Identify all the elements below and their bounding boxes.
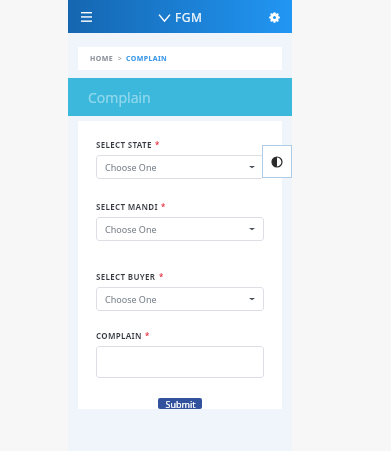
button[interactable]: COMPLAIN (126, 54, 168, 64)
button[interactable]: Choose One (96, 155, 264, 179)
staticText: COMPLAIN (96, 330, 142, 341)
button[interactable]: Settings (264, 7, 284, 27)
staticText: * (155, 139, 160, 150)
staticText: FGM (175, 9, 203, 25)
staticText: Choose One (105, 161, 157, 173)
button[interactable]: HOME (90, 54, 114, 64)
staticText: Choose One (105, 293, 157, 305)
staticText: * (161, 201, 166, 212)
staticText: Complain (88, 88, 151, 107)
staticText: Choose One (105, 223, 157, 235)
button[interactable]: Choose One (96, 217, 264, 241)
staticText: Submit (165, 398, 196, 409)
staticText: SELECT MANDI (96, 201, 158, 212)
staticText: SELECT BUYER (96, 271, 156, 282)
staticText: SELECT STATE (96, 139, 152, 150)
button[interactable]: Submit (158, 398, 202, 409)
button[interactable]: Choose One (96, 287, 264, 311)
button[interactable]: Menu (76, 7, 96, 27)
staticText: > (114, 54, 126, 64)
staticText: * (145, 330, 150, 341)
staticText: * (159, 271, 164, 282)
button[interactable] (96, 346, 264, 378)
button[interactable]: Toggle contrast (262, 145, 292, 178)
